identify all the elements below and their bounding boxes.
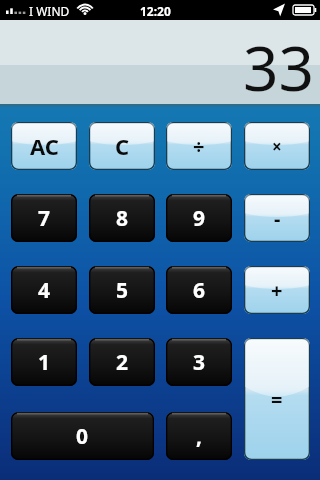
staticText: × bbox=[272, 135, 282, 158]
button[interactable]: Clear bbox=[89, 122, 155, 170]
button[interactable]: Two bbox=[89, 338, 155, 386]
staticText: 3 bbox=[193, 348, 206, 377]
staticText: - bbox=[274, 205, 281, 232]
button[interactable]: Five bbox=[89, 266, 155, 314]
staticText: AC bbox=[30, 131, 59, 161]
button[interactable]: Minus bbox=[244, 194, 310, 242]
staticText: 6 bbox=[193, 276, 206, 305]
button[interactable]: Decimal comma bbox=[166, 412, 232, 460]
button[interactable]: Multiply bbox=[244, 122, 310, 170]
button[interactable]: Four bbox=[11, 266, 77, 314]
button[interactable]: One bbox=[11, 338, 77, 386]
staticText: C bbox=[115, 131, 130, 161]
button[interactable]: Equals bbox=[244, 338, 310, 460]
button[interactable]: Plus bbox=[244, 266, 310, 314]
button[interactable]: Eight bbox=[89, 194, 155, 242]
staticText: 33 bbox=[243, 25, 314, 109]
staticText: 4 bbox=[38, 276, 51, 305]
button[interactable]: Seven bbox=[11, 194, 77, 242]
staticText: 5 bbox=[116, 276, 129, 305]
button[interactable]: Divide bbox=[166, 122, 232, 170]
staticText: + bbox=[271, 277, 283, 304]
staticText: 9 bbox=[193, 204, 206, 233]
staticText: ÷ bbox=[193, 133, 205, 160]
button[interactable]: Six bbox=[166, 266, 232, 314]
staticText: , bbox=[196, 422, 202, 451]
button[interactable]: All clear bbox=[11, 122, 77, 170]
staticText: 0 bbox=[76, 422, 89, 451]
staticText: 1 bbox=[38, 348, 51, 377]
staticText: I WIND bbox=[29, 3, 70, 19]
staticText: 8 bbox=[116, 204, 129, 233]
staticText: 7 bbox=[38, 204, 51, 233]
staticText: 12:20 bbox=[140, 3, 171, 19]
button[interactable]: Nine bbox=[166, 194, 232, 242]
button[interactable]: Zero bbox=[11, 412, 154, 460]
staticText: 2 bbox=[116, 348, 129, 377]
button[interactable]: Three bbox=[166, 338, 232, 386]
staticText: = bbox=[271, 386, 283, 413]
